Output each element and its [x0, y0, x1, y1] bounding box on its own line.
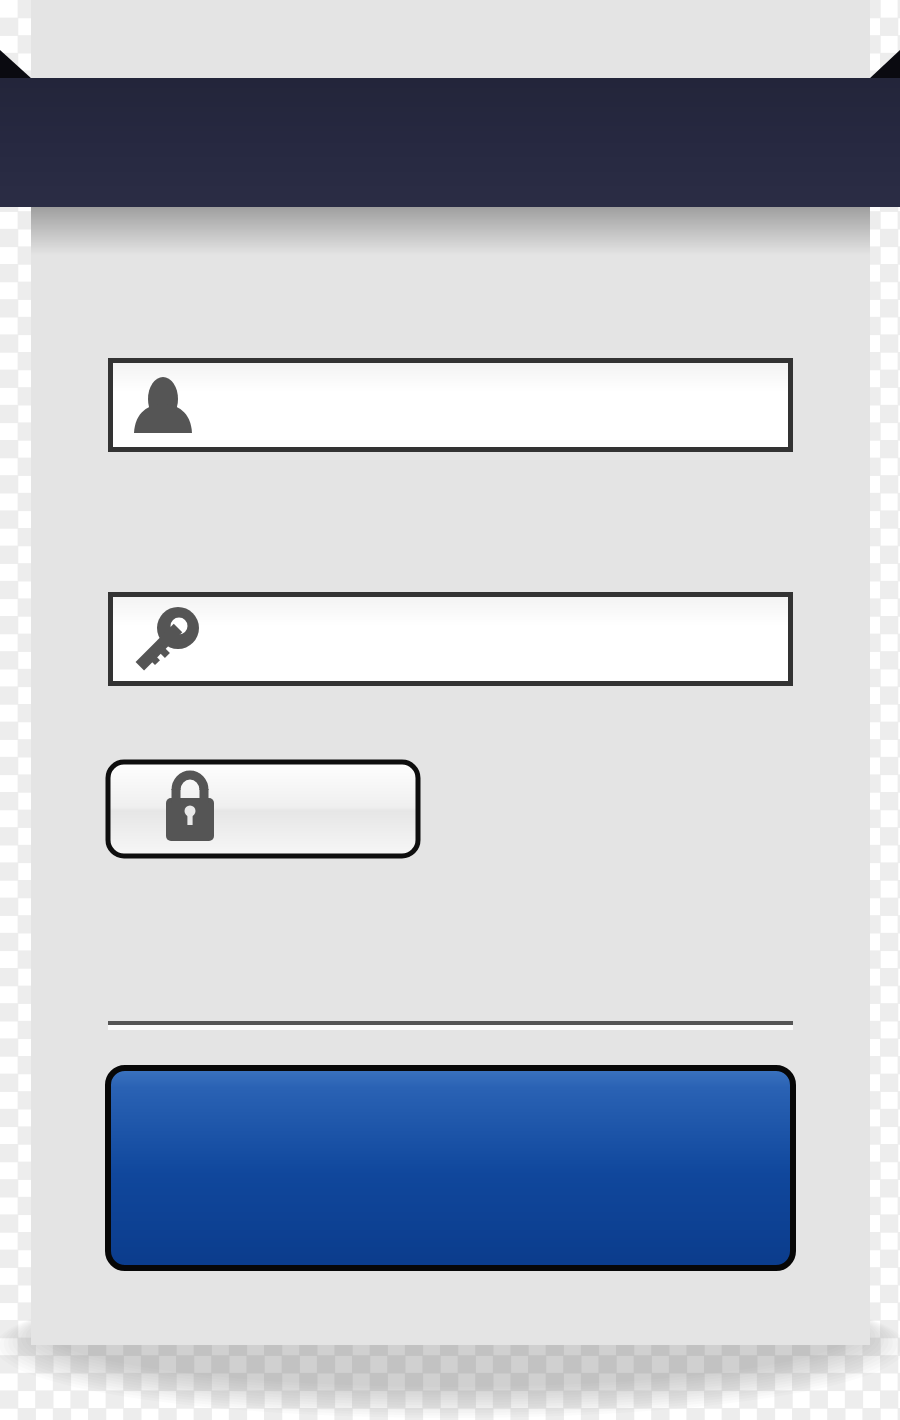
button[interactable]: Lock [108, 762, 418, 856]
button[interactable]: Password field [108, 592, 793, 686]
button[interactable]: Username field [108, 358, 793, 452]
button[interactable]: Sign in [108, 1068, 793, 1268]
